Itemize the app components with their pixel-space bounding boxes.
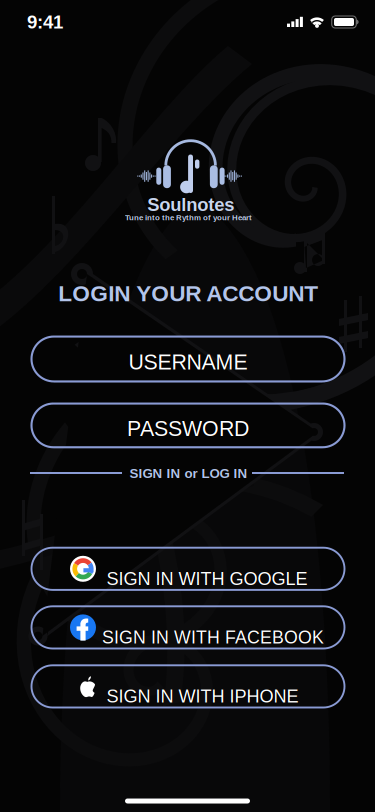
staticText: USERNAME (128, 350, 247, 374)
button[interactable]: SIGN IN WITH GOOGLE (31, 548, 344, 590)
staticText: PASSWORD (127, 417, 249, 440)
staticText: SIGN IN WITH IPHONE (107, 686, 299, 706)
button[interactable]: PASSWORD (31, 403, 344, 447)
button[interactable]: SIGN IN WITH FACEBOOK (31, 606, 344, 648)
staticText: 9:41 (27, 12, 63, 32)
staticText: Tune into the Rythm of your Heart (125, 213, 252, 222)
button[interactable]: SIGN IN WITH IPHONE (31, 665, 344, 707)
staticText: SIGN IN WITH GOOGLE (106, 569, 307, 589)
staticText: SIGN IN or LOG IN (129, 466, 247, 481)
staticText: SIGN IN WITH FACEBOOK (102, 627, 324, 647)
staticText: LOGIN YOUR ACCOUNT (58, 281, 318, 306)
button[interactable]: USERNAME (31, 337, 344, 381)
staticText: Soulnotes (147, 194, 234, 215)
